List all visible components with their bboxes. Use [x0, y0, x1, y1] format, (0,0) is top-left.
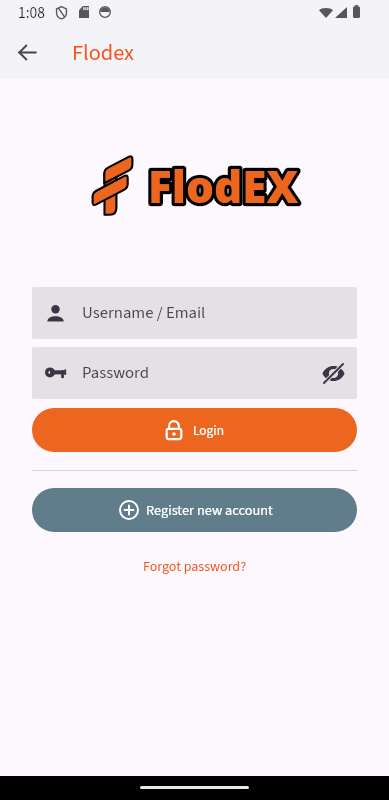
staticText: Password	[82, 361, 149, 385]
staticText: Flodex	[72, 37, 134, 69]
button[interactable]: Username / Email	[32, 287, 357, 339]
staticText: 1:08	[18, 2, 45, 24]
button[interactable]: Show password	[317, 357, 349, 389]
button[interactable]: Login	[32, 408, 357, 452]
staticText: FlodEX	[148, 156, 299, 216]
staticText: Username / Email	[82, 301, 206, 325]
button[interactable]: Back	[9, 34, 45, 70]
button[interactable]: Password	[32, 347, 357, 399]
button[interactable]: Forgot password?	[0, 557, 389, 577]
staticText: Login	[193, 421, 224, 440]
staticText: Register new account	[146, 500, 273, 520]
staticText: FlodEX	[148, 156, 299, 216]
button[interactable]: Register new account	[32, 488, 357, 532]
